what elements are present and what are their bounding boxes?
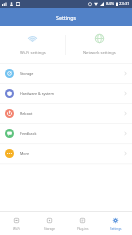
- button[interactable]: Network settings: [66, 26, 132, 63]
- button[interactable]: Storage: [33, 212, 66, 235]
- button[interactable]: Settings: [99, 212, 132, 235]
- staticText: Wi-Fi: [13, 227, 20, 231]
- staticText: Storage: [44, 227, 55, 231]
- staticText: 84%: [106, 1, 115, 7]
- staticText: Network settings: [83, 50, 116, 56]
- staticText: Wi-Fi settings: [20, 50, 46, 56]
- button[interactable]: Wi-Fi settings: [0, 26, 65, 63]
- staticText: Feedback: [20, 131, 37, 136]
- staticText: 23:31: [119, 1, 130, 7]
- button[interactable]: Reboot: [0, 103, 132, 123]
- staticText: Reboot: [20, 111, 33, 116]
- staticText: Plug-ins: [77, 227, 89, 231]
- button[interactable]: Plug-ins: [66, 212, 99, 235]
- button[interactable]: Feedback: [0, 123, 132, 143]
- staticText: Storage: [20, 71, 34, 76]
- button[interactable]: Hardware & system: [0, 83, 132, 103]
- staticText: More: [20, 151, 30, 156]
- staticText: Settings: [56, 14, 77, 21]
- button[interactable]: Storage: [0, 63, 132, 83]
- button[interactable]: Wi-Fi: [0, 212, 33, 235]
- button[interactable]: More: [0, 143, 132, 163]
- staticText: Settings: [110, 227, 122, 231]
- staticText: Hardware & system: [20, 91, 54, 96]
